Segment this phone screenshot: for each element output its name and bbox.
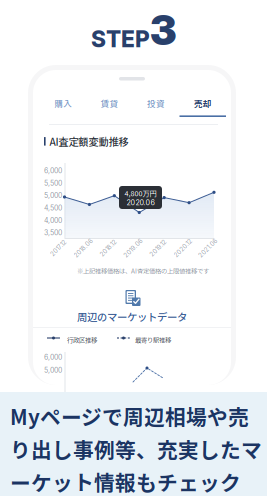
staticText: 2017.12 bbox=[48, 244, 68, 252]
staticText: 2020.06 bbox=[126, 198, 154, 207]
staticText: Myページで周辺相場や売 bbox=[10, 401, 249, 431]
button[interactable]: 購入 bbox=[40, 91, 86, 117]
staticText: 2019.06 bbox=[121, 244, 145, 252]
staticText: ーケット情報もチェック bbox=[10, 467, 241, 496]
staticText: 5,500 bbox=[44, 179, 62, 187]
staticText: 最寄り駅推移 bbox=[135, 335, 171, 344]
staticText: 4,500 bbox=[44, 204, 62, 212]
staticText: 2021.06 bbox=[196, 244, 220, 252]
button[interactable]: 賃貸 bbox=[86, 91, 133, 117]
staticText: 2020.12 bbox=[172, 244, 195, 252]
staticText: 賃貸 bbox=[101, 97, 119, 109]
staticText: AI査定額変動推移 bbox=[50, 134, 129, 149]
staticText: 6,000 bbox=[44, 167, 62, 175]
staticText: 4,000 bbox=[44, 216, 62, 225]
staticText: り出し事例等、充実したマ bbox=[10, 434, 262, 464]
staticText: 周辺のマーケットデータ bbox=[77, 309, 187, 324]
staticText: 行政区推移 bbox=[67, 335, 97, 344]
staticText: 4,800万円 bbox=[124, 188, 156, 198]
staticText: 3,500 bbox=[44, 229, 62, 237]
button[interactable]: 投資 bbox=[133, 91, 179, 117]
staticText: 3 bbox=[150, 5, 176, 55]
staticText: 5,000 bbox=[44, 366, 62, 374]
staticText: 購入 bbox=[54, 97, 72, 109]
staticText: 2018.06 bbox=[71, 244, 95, 252]
staticText: 5,000 bbox=[44, 191, 62, 200]
staticText: 6,000 bbox=[44, 353, 62, 361]
staticText: 2018.12 bbox=[98, 244, 119, 252]
button[interactable]: 売却 bbox=[179, 91, 226, 117]
staticText: STEP bbox=[91, 25, 150, 53]
staticText: 売却 bbox=[194, 97, 212, 109]
staticText: 2019.12 bbox=[148, 244, 169, 252]
staticText: ※上記推移価格は、AI査定価格の上限値推移です bbox=[77, 266, 209, 275]
staticText: 投資 bbox=[147, 97, 165, 109]
